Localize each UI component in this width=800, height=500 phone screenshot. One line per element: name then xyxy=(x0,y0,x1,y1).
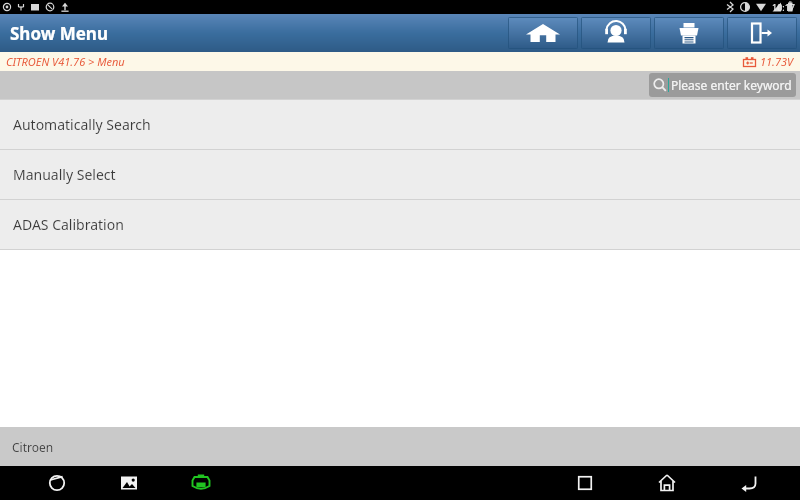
button[interactable]: Screenshot xyxy=(114,468,144,498)
staticText: Citroen xyxy=(12,439,54,455)
button[interactable]: Exit xyxy=(727,17,797,49)
button[interactable]: Home xyxy=(652,468,682,498)
staticText: Show Menu xyxy=(10,22,108,45)
button[interactable]: Automatically Search xyxy=(0,100,800,149)
button[interactable]: VCI connection xyxy=(186,468,216,498)
button[interactable]: Please enter keyword xyxy=(649,73,796,97)
button[interactable]: Back xyxy=(734,468,764,498)
button[interactable]: Manually Select xyxy=(0,150,800,199)
staticText: Manually Select xyxy=(13,165,116,184)
staticText: Please enter keyword xyxy=(671,77,792,93)
staticText: 10:17 xyxy=(772,1,796,13)
staticText: Automatically Search xyxy=(13,115,151,134)
button[interactable]: Home xyxy=(508,17,578,49)
button[interactable]: Support xyxy=(581,17,651,49)
button[interactable]: Recent apps xyxy=(570,468,600,498)
staticText: 11.73V xyxy=(760,54,794,69)
staticText: CITROEN V41.76 > Menu xyxy=(6,54,125,69)
button[interactable]: ADAS Calibration xyxy=(0,200,800,249)
staticText: ADAS Calibration xyxy=(13,215,124,234)
button[interactable]: Print xyxy=(654,17,724,49)
button[interactable]: Browser xyxy=(42,468,72,498)
button[interactable]: Citroen xyxy=(0,427,800,466)
